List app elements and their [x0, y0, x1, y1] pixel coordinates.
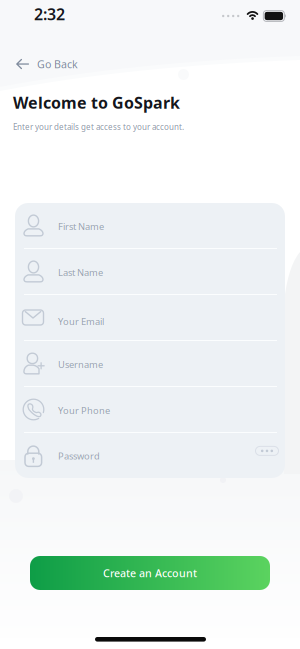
staticText: Last Name — [58, 266, 103, 279]
button[interactable]: First Name — [15, 203, 285, 248]
staticText: Password — [58, 450, 100, 462]
staticText: Your Phone — [58, 404, 110, 417]
button[interactable]: Go Back — [0, 0, 78, 71]
staticText: 2:32 — [34, 3, 65, 25]
button[interactable]: Show password — [255, 446, 278, 455]
staticText: Create an Account — [103, 566, 197, 580]
staticText: First Name — [58, 220, 104, 233]
staticText: Welcome to GoSpark — [13, 92, 180, 113]
staticText: Username — [58, 358, 103, 371]
button[interactable]: Your Email — [15, 295, 285, 340]
button[interactable]: Your Phone — [15, 387, 285, 432]
staticText: Go Back — [37, 57, 78, 71]
button[interactable]: Last Name — [15, 249, 285, 294]
button[interactable]: Password — [15, 433, 285, 478]
staticText: Enter your details get access to your ac… — [13, 121, 184, 132]
button[interactable]: Create an Account — [30, 556, 270, 590]
button[interactable]: Username — [15, 341, 285, 386]
staticText: Your Email — [58, 315, 104, 328]
